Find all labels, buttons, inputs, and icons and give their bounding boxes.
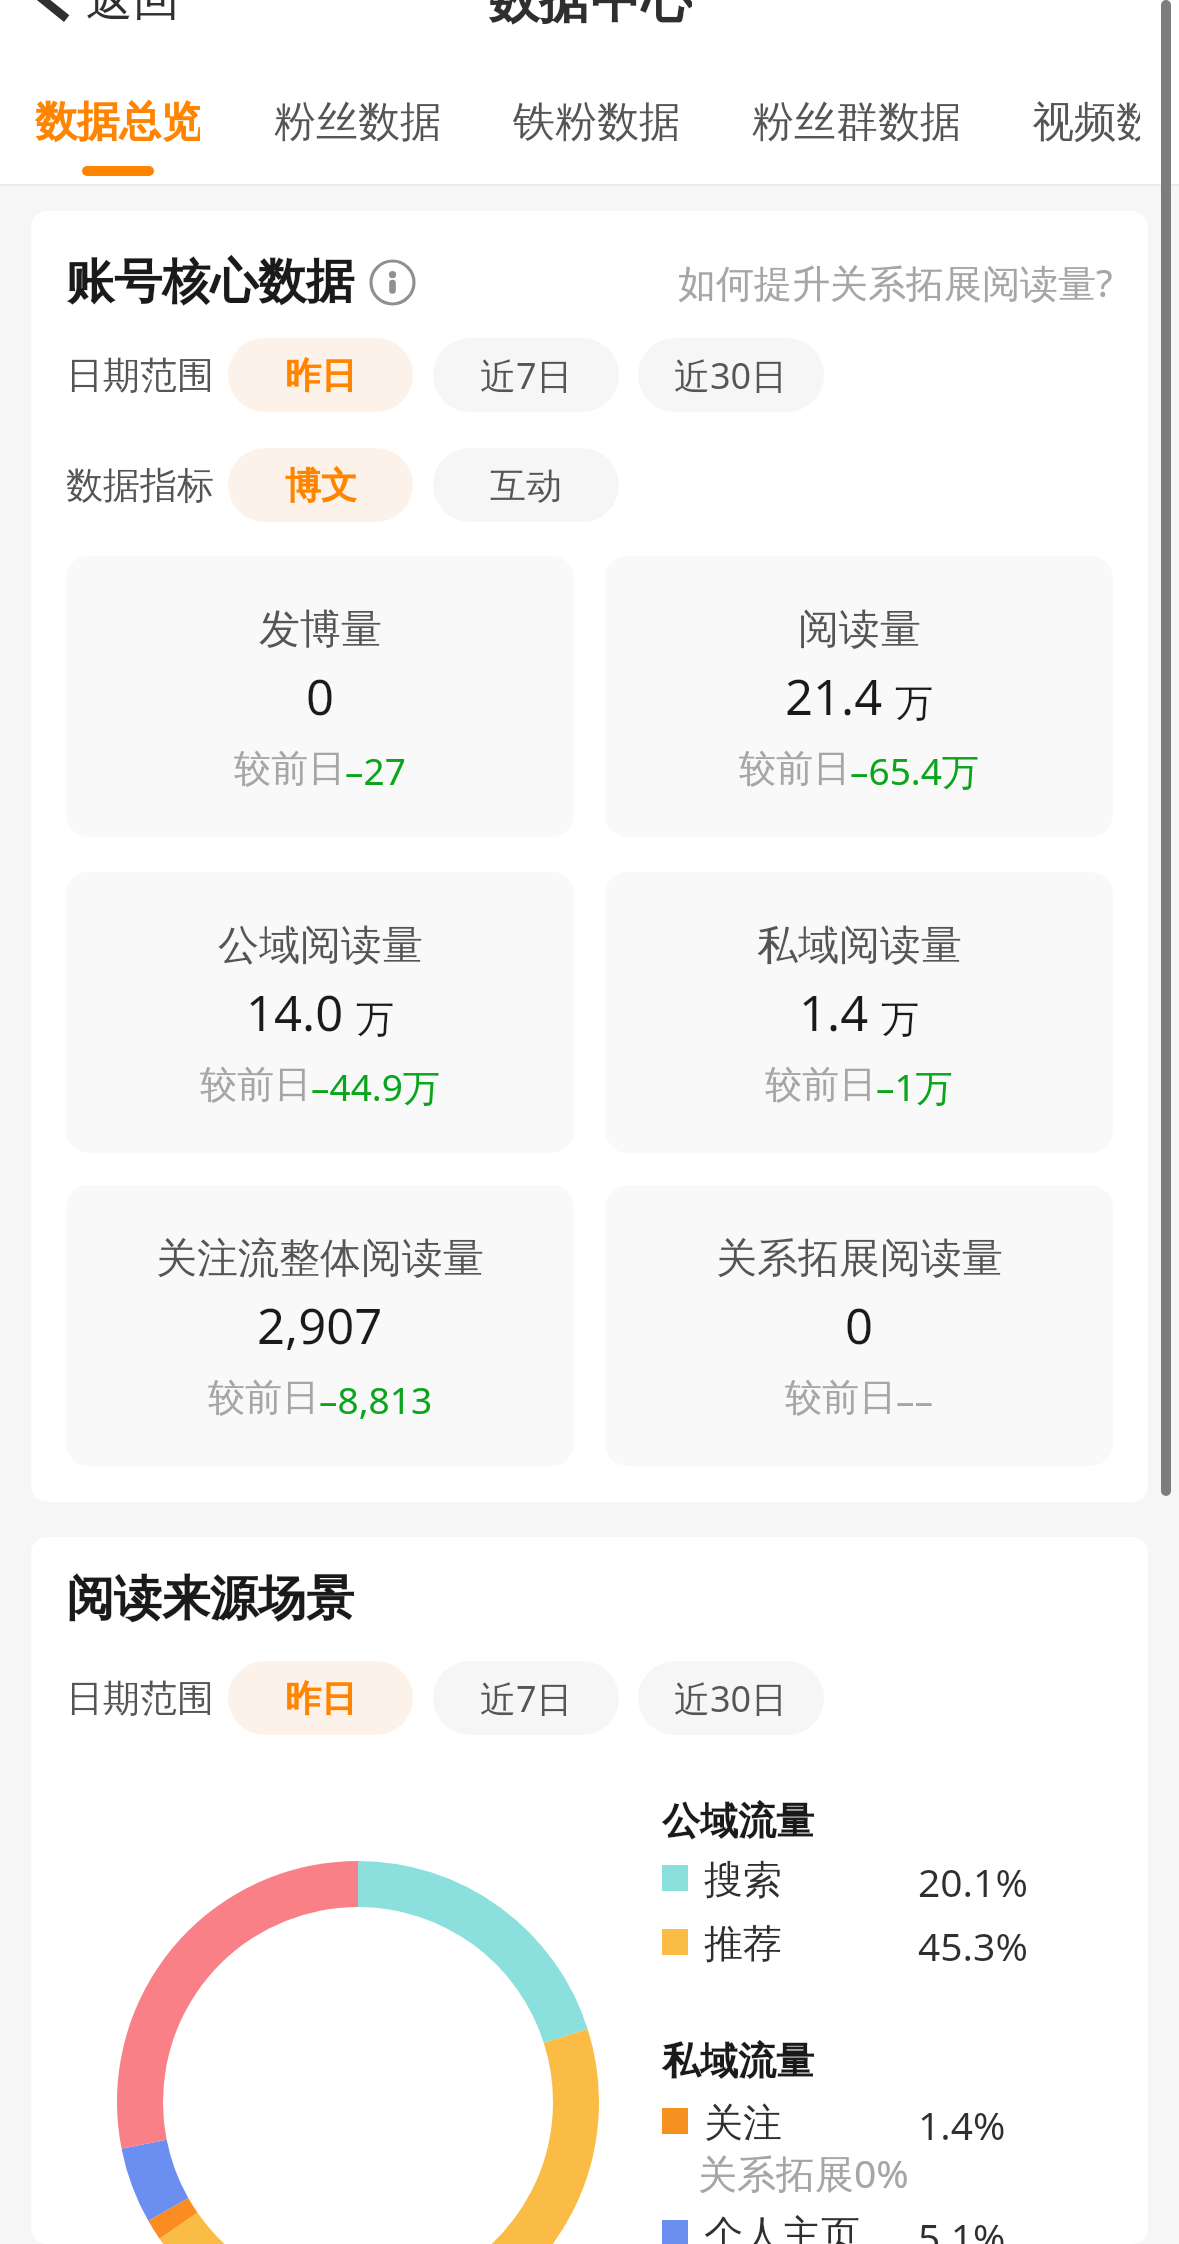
button[interactable]: 关注 xyxy=(662,2098,1092,2144)
button[interactable]: 公域阅读量 xyxy=(66,872,574,1153)
button[interactable]: 数据总览 xyxy=(0,96,237,176)
button[interactable]: 搜索 xyxy=(662,1855,1092,1901)
staticText: 近7日 xyxy=(480,351,573,400)
staticText: 较前日 xyxy=(200,1061,311,1108)
staticText: 返回 xyxy=(86,0,180,29)
staticText: 较前日 xyxy=(765,1061,876,1108)
staticText: 昨日 xyxy=(285,353,357,398)
button[interactable]: 视频数据 xyxy=(995,96,1177,176)
staticText: 关系拓展阅读量 xyxy=(716,1233,1003,1285)
staticText: 0 xyxy=(306,663,335,730)
staticText: 数据总览 xyxy=(35,96,200,149)
staticText: –1万 xyxy=(876,1061,953,1112)
button[interactable]: 关系拓展阅读量 xyxy=(605,1185,1113,1466)
staticText: 近30日 xyxy=(674,1674,788,1723)
staticText: 14.0 xyxy=(246,979,344,1046)
button[interactable]: 说明 xyxy=(369,259,416,306)
button[interactable]: 发博量 xyxy=(66,556,574,837)
staticText: 近30日 xyxy=(674,351,788,400)
button[interactable]: 昨日 xyxy=(228,338,413,412)
staticText: 0 xyxy=(845,1292,874,1359)
staticText: 推荐 xyxy=(704,1919,918,1965)
button[interactable]: 私域阅读量 xyxy=(605,872,1113,1153)
button[interactable]: 近30日 xyxy=(638,338,824,412)
staticText: 公域流量 xyxy=(662,1797,814,1845)
staticText: 账号核心数据 xyxy=(66,252,354,312)
staticText: 博文 xyxy=(285,463,357,508)
button[interactable]: 个人主页 xyxy=(662,2210,1092,2244)
staticText: 私域阅读量 xyxy=(757,920,962,972)
staticText: 阅读来源场景 xyxy=(66,1569,354,1629)
staticText: 私域流量 xyxy=(662,2037,814,2085)
button[interactable]: 近7日 xyxy=(433,1661,619,1735)
staticText: 1.4 xyxy=(799,979,869,1046)
staticText: 21.4 xyxy=(785,663,883,730)
staticText: 5.1% xyxy=(918,2210,1006,2244)
staticText: 近7日 xyxy=(480,1674,573,1723)
staticText: –8,813 xyxy=(319,1374,433,1424)
staticText: 昨日 xyxy=(285,1676,357,1721)
staticText: 视频数据 xyxy=(1032,96,1140,149)
staticText: 粉丝群数据 xyxy=(752,96,958,149)
button[interactable]: 铁粉数据 xyxy=(476,96,715,176)
button[interactable]: 推荐 xyxy=(662,1919,1092,1965)
button[interactable]: 返回 xyxy=(0,0,194,29)
button[interactable]: 近30日 xyxy=(638,1661,824,1735)
staticText: 粉丝数据 xyxy=(274,96,439,149)
staticText: 数据指标 xyxy=(66,462,214,509)
staticText: 日期范围 xyxy=(66,352,214,399)
staticText: 20.1% xyxy=(918,1855,1028,1901)
staticText: 较前日 xyxy=(785,1374,896,1421)
staticText: –65.4万 xyxy=(850,745,979,796)
button[interactable]: 博文 xyxy=(228,448,413,522)
button[interactable]: 如何提升关系拓展阅读量? xyxy=(678,256,1113,308)
staticText: 搜索 xyxy=(704,1855,918,1901)
staticText: 较前日 xyxy=(208,1374,319,1421)
button[interactable]: 关注流整体阅读量 xyxy=(66,1185,574,1466)
staticText: 万 xyxy=(356,995,394,1043)
button[interactable]: 互动 xyxy=(433,448,619,522)
staticText: 铁粉数据 xyxy=(513,96,678,149)
button[interactable]: 近7日 xyxy=(433,338,619,412)
button[interactable]: 昨日 xyxy=(228,1661,413,1735)
staticText: 互动 xyxy=(490,463,562,508)
staticText: –– xyxy=(896,1374,933,1424)
staticText: 日期范围 xyxy=(66,1675,214,1722)
staticText: 关注 xyxy=(704,2098,918,2144)
staticText: 个人主页 xyxy=(704,2210,918,2244)
button[interactable]: 阅读量 xyxy=(605,556,1113,837)
staticText: 45.3% xyxy=(918,1919,1028,1965)
staticText: 发博量 xyxy=(259,604,382,656)
button[interactable]: 粉丝数据 xyxy=(237,96,476,176)
staticText: 万 xyxy=(881,995,919,1043)
staticText: 数据中心 xyxy=(488,0,692,30)
staticText: –44.9万 xyxy=(311,1061,440,1112)
staticText: 2,907 xyxy=(257,1292,383,1359)
staticText: 公域阅读量 xyxy=(218,920,423,972)
staticText: 关注流整体阅读量 xyxy=(156,1233,484,1285)
staticText: –27 xyxy=(345,745,406,795)
staticText: 1.4% xyxy=(918,2098,1006,2144)
staticText: 阅读量 xyxy=(798,604,921,656)
staticText: 较前日 xyxy=(234,745,345,792)
button[interactable]: 粉丝群数据 xyxy=(715,96,995,176)
staticText: 较前日 xyxy=(739,745,850,792)
staticText: 万 xyxy=(895,679,933,727)
button[interactable]: 关系拓展0% xyxy=(698,2146,909,2199)
